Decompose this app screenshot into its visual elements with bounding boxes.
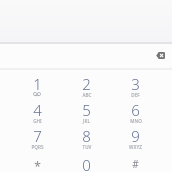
button[interactable]: 1 voicemail: [12, 74, 62, 100]
button[interactable]: 7: [12, 126, 62, 152]
button[interactable]: 8: [62, 126, 111, 152]
staticText: 2: [82, 74, 91, 94]
button[interactable]: Backspace: [148, 43, 172, 68]
button[interactable]: #: [111, 155, 160, 172]
staticText: 1: [33, 74, 42, 94]
button[interactable]: 2: [62, 74, 111, 100]
staticText: 4: [33, 100, 42, 120]
staticText: #: [132, 157, 139, 171]
staticText: ABC: [82, 92, 92, 98]
staticText: 6: [131, 100, 140, 120]
staticText: GHI: [33, 118, 42, 124]
staticText: 8: [82, 126, 91, 146]
button[interactable]: 3: [111, 74, 160, 100]
staticText: MNO: [130, 118, 142, 124]
staticText: DEF: [131, 92, 140, 98]
staticText: WXYZ: [129, 144, 142, 150]
staticText: JKL: [83, 118, 90, 124]
staticText: 5: [82, 100, 91, 120]
staticText: TUV: [82, 144, 92, 150]
staticText: PQRS: [31, 144, 44, 150]
staticText: 7: [33, 126, 42, 146]
staticText: *: [34, 158, 41, 172]
button[interactable]: 9: [111, 126, 160, 152]
button[interactable]: 0: [62, 155, 111, 172]
staticText: 3: [131, 74, 140, 94]
button[interactable]: *: [12, 155, 62, 172]
button[interactable]: 5: [62, 100, 111, 126]
staticText: 9: [131, 126, 140, 146]
staticText: 0: [82, 155, 91, 172]
button[interactable]: 4: [12, 100, 62, 126]
button[interactable]: 6: [111, 100, 160, 126]
